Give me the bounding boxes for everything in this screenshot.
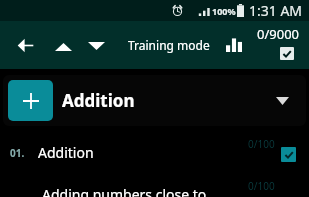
staticText: 100% [212,5,236,17]
button[interactable]: Select all [280,47,294,60]
staticText: 1:31 AM [249,1,303,20]
button[interactable]: 01. [0,131,309,173]
staticText: 0/9000 [257,25,300,43]
staticText: Adding numbers close to [42,185,207,197]
staticText: Addition [38,143,94,162]
staticText: Addition [62,89,135,112]
staticText: Training mode [128,37,210,53]
button[interactable]: Add [3,75,306,126]
button[interactable]: Back [9,29,41,61]
button[interactable]: Toggle lesson [281,147,296,162]
button[interactable]: Next [81,31,111,61]
staticText: 0/100 [248,137,275,151]
button[interactable]: Previous [48,32,78,62]
button[interactable]: Statistics [219,30,249,60]
button[interactable]: Adding numbers close to [0,173,309,197]
staticText: 01. [10,146,25,160]
button[interactable]: Add [8,80,53,121]
button[interactable]: Expand [269,88,295,114]
staticText: 0/100 [248,179,275,193]
